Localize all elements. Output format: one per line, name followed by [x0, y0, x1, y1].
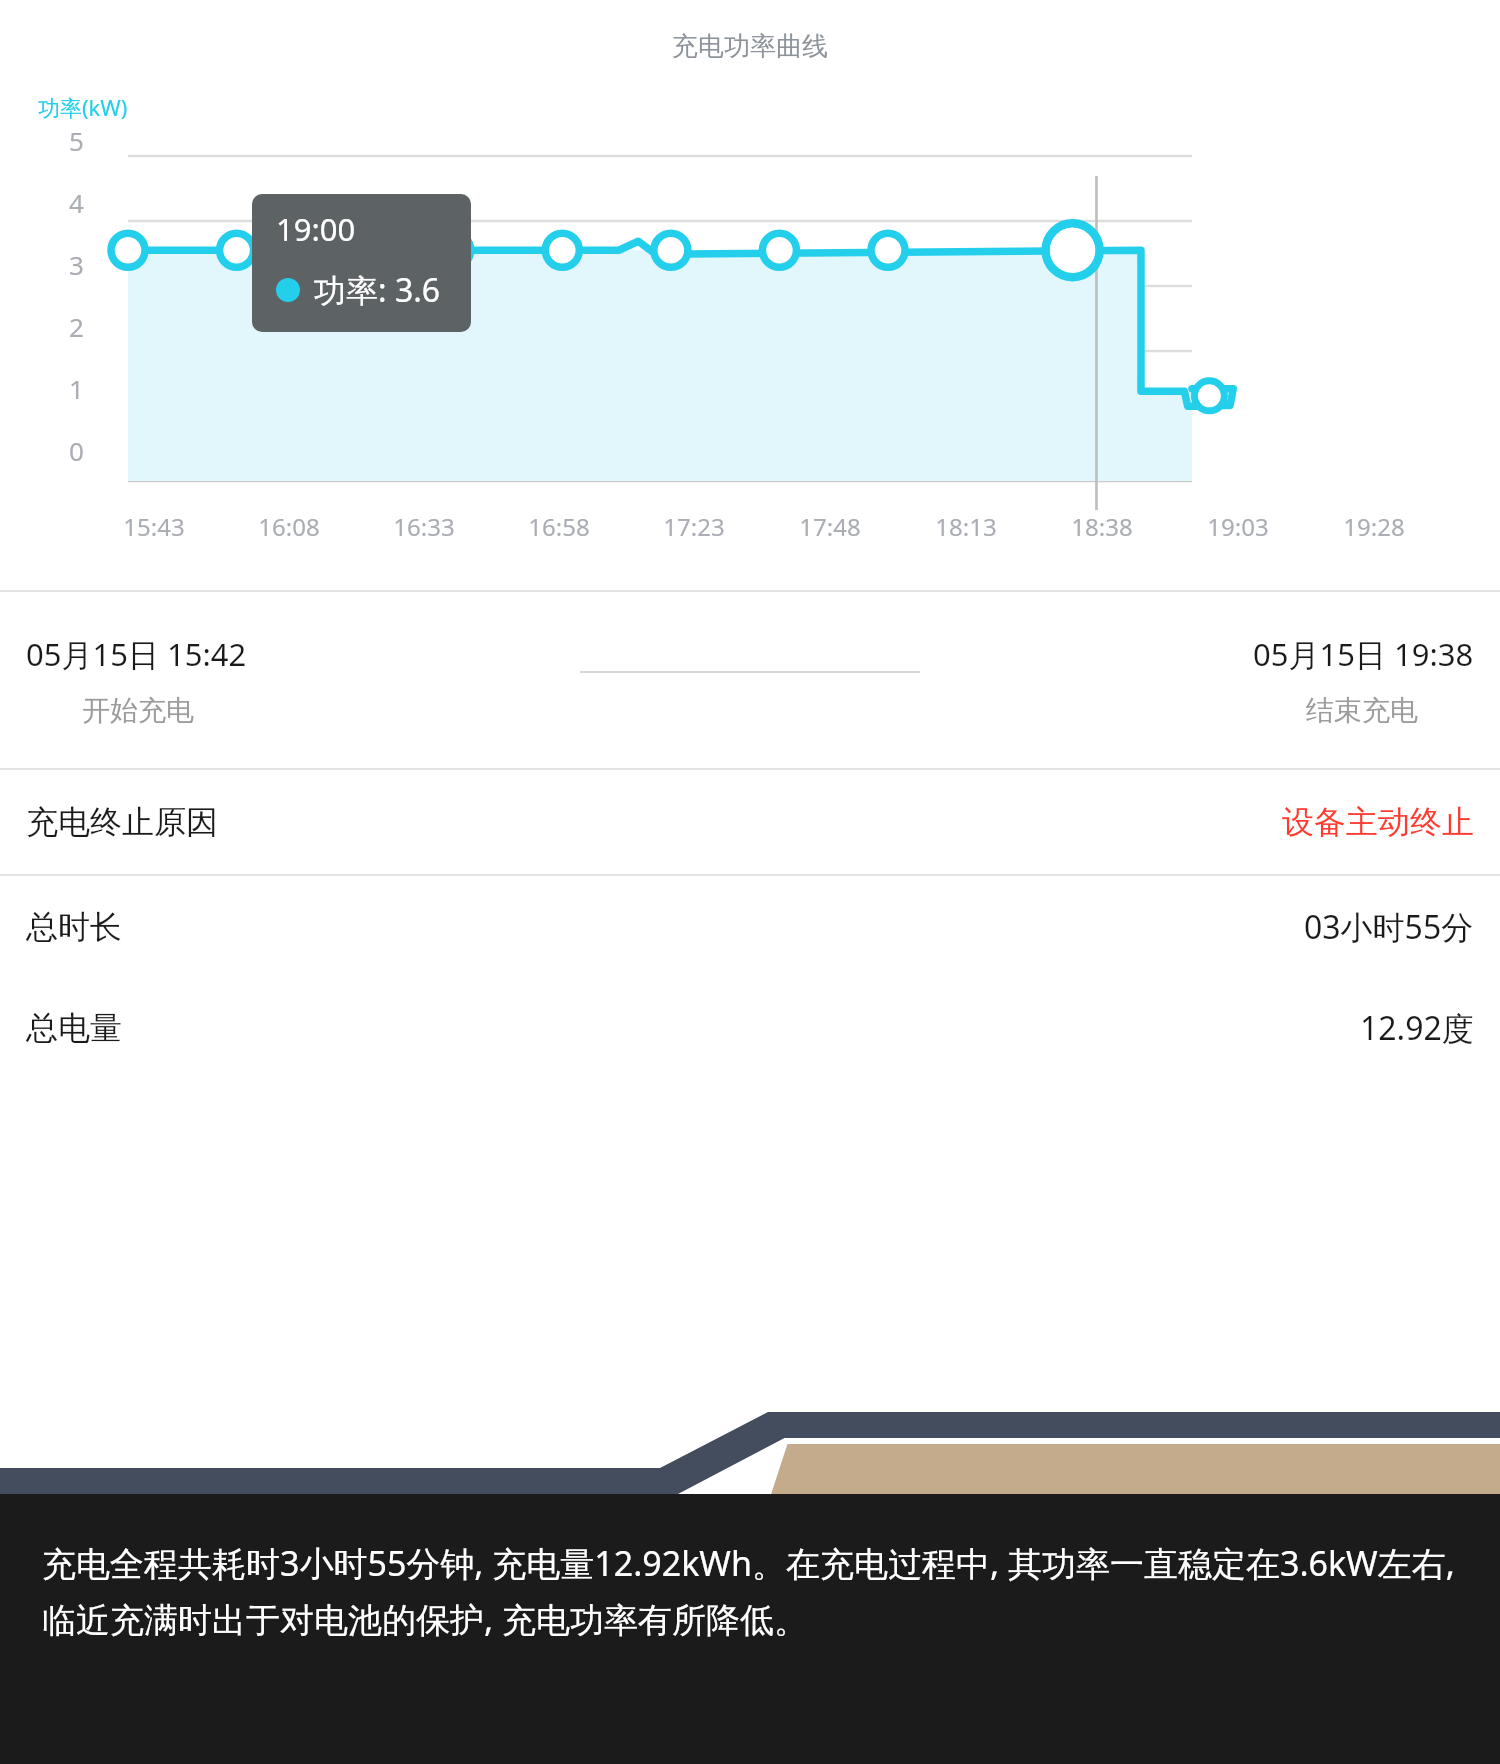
staticText: 充电终止原因 — [26, 802, 218, 842]
staticText: 充电全程共耗时3小时55分钟, 充电量12.92kWh。在充电过程中, 其功率一… — [42, 1540, 1476, 1642]
staticText: 4 — [69, 185, 84, 220]
staticText: 19:00 — [276, 208, 356, 250]
staticText: 18:38 — [1071, 510, 1133, 543]
staticText: 开始充电 — [82, 693, 194, 728]
staticText: 1 — [69, 371, 84, 406]
staticText: 19:03 — [1207, 510, 1269, 543]
button[interactable]: 05月15日 15:42 — [0, 592, 1500, 768]
staticText: 2 — [69, 309, 84, 344]
staticText: 12.92度 — [1360, 1006, 1474, 1050]
staticText: 总时长 — [26, 907, 122, 947]
staticText: 功率(kW) — [38, 92, 128, 122]
staticText: 0 — [69, 433, 84, 468]
button[interactable]: 总时长 — [0, 876, 1500, 978]
staticText: 16:58 — [528, 510, 590, 543]
button[interactable]: 充电终止原因 — [0, 770, 1500, 874]
staticText: 16:08 — [258, 510, 320, 543]
button[interactable]: 总电量 — [0, 978, 1500, 1078]
staticText: 03小时55分 — [1304, 905, 1474, 949]
staticText: 3 — [69, 247, 84, 282]
staticText: 16:33 — [393, 510, 455, 543]
staticText: 充电功率曲线 — [672, 30, 828, 63]
staticText: 总电量 — [26, 1008, 122, 1048]
staticText: 17:23 — [663, 510, 725, 543]
staticText: 功率: 3.6 — [314, 268, 441, 312]
staticText: 18:13 — [935, 510, 997, 543]
staticText: 5 — [69, 123, 84, 158]
staticText: 设备主动终止 — [1282, 802, 1474, 842]
staticText: 17:48 — [799, 510, 861, 543]
staticText: 05月15日 15:42 — [26, 633, 247, 675]
staticText: 15:43 — [123, 510, 185, 543]
staticText: 05月15日 19:38 — [1253, 633, 1474, 675]
staticText: 19:28 — [1343, 510, 1405, 543]
staticText: 结束充电 — [1306, 693, 1418, 728]
